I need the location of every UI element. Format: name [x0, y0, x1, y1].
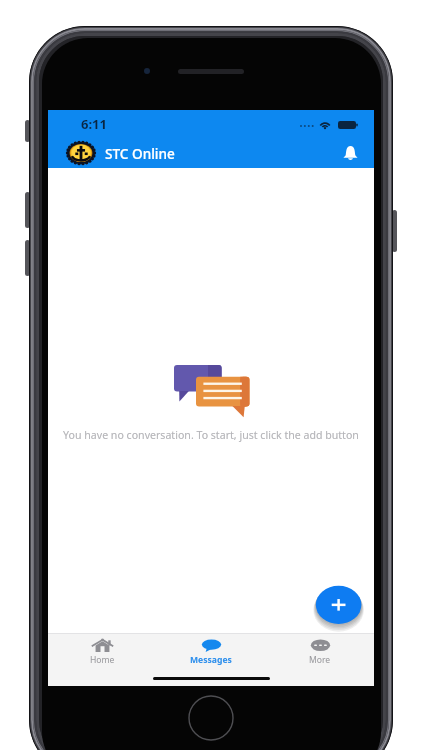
button[interactable]: Notifications: [338, 141, 362, 165]
button[interactable]: Home: [65, 639, 139, 666]
staticText: STC Online: [105, 144, 175, 163]
button[interactable]: Messages: [174, 639, 248, 666]
staticText: You have no conversation. To start, just…: [48, 428, 374, 442]
staticText: More: [309, 654, 331, 666]
staticText: 6:11: [81, 115, 107, 133]
button[interactable]: More: [283, 639, 357, 666]
button[interactable]: Add conversation: [312, 582, 365, 628]
staticText: Home: [90, 654, 115, 666]
staticText: Messages: [190, 654, 232, 666]
